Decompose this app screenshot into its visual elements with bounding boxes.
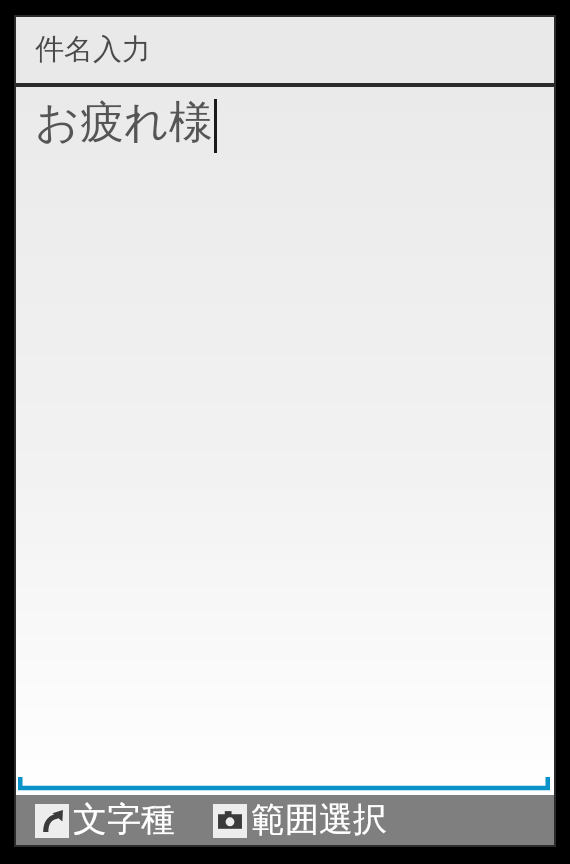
staticText: お疲れ様 [35,95,214,150]
button[interactable]: 範囲選択 [213,799,387,842]
staticText: 範囲選択 [251,798,387,841]
button[interactable]: お疲れ様 [16,87,554,795]
button[interactable]: 文字種 [35,799,175,842]
button[interactable]: 件名入力 [16,17,554,83]
staticText: 件名入力 [35,31,151,68]
staticText: 文字種 [73,798,175,841]
